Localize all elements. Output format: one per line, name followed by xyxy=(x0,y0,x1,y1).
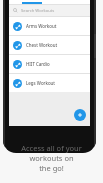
staticText: Arms Workout xyxy=(26,23,57,29)
staticText: Access all of your workouts on the go! xyxy=(6,143,97,173)
button[interactable]: Search Workouts xyxy=(9,5,90,16)
button[interactable]: Chest Workout xyxy=(9,36,90,54)
button[interactable]: HIIT Cardio xyxy=(9,55,90,73)
staticText: Chest Workout xyxy=(26,42,58,48)
button[interactable]: Add workout xyxy=(74,109,86,121)
button[interactable]: Legs Workout xyxy=(9,74,90,92)
staticText: HIIT Cardio xyxy=(26,61,50,67)
staticText: Legs Workout xyxy=(26,80,56,86)
button[interactable]: Arms Workout xyxy=(9,17,90,35)
staticText: Search Workouts xyxy=(21,8,55,14)
